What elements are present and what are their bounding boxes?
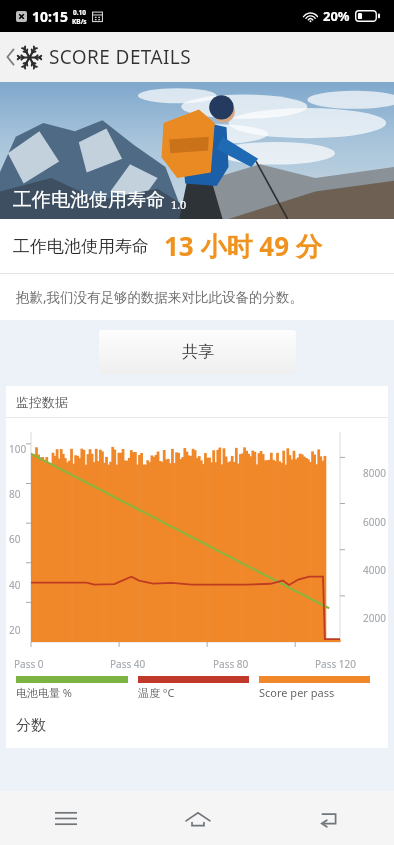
- staticText: 20%: [323, 7, 350, 25]
- staticText: 10:15: [32, 7, 68, 26]
- staticText: 80: [9, 487, 21, 501]
- staticText: 共享: [182, 342, 214, 362]
- button[interactable]: Recent apps: [0, 791, 132, 845]
- staticText: 40: [9, 578, 21, 592]
- staticText: SCORE DETAILS: [49, 44, 192, 70]
- staticText: 2000: [363, 611, 386, 625]
- staticText: Pass 120: [315, 657, 356, 671]
- staticText: Pass 0: [14, 657, 44, 671]
- button[interactable]: Home: [132, 791, 263, 845]
- staticText: 温度 °C: [138, 685, 175, 700]
- staticText: 电池电量 %: [16, 685, 73, 700]
- staticText: 0.10: [73, 8, 86, 17]
- staticText: Pass 80: [213, 657, 249, 671]
- button[interactable]: Back: [0, 38, 202, 76]
- staticText: 13 小时 49 分: [164, 228, 322, 264]
- staticText: Pass 40: [110, 657, 146, 671]
- staticText: 1.0: [171, 197, 187, 212]
- staticText: KB/s: [72, 17, 87, 26]
- staticText: 8000: [363, 466, 386, 480]
- staticText: 4000: [363, 563, 386, 577]
- staticText: 分数: [16, 716, 46, 735]
- staticText: Score per pass: [259, 685, 335, 700]
- button[interactable]: 共享: [99, 330, 296, 374]
- staticText: 工作电池使用寿命: [13, 236, 149, 257]
- staticText: 6000: [363, 515, 386, 529]
- staticText: 监控数据: [16, 394, 68, 410]
- staticText: 60: [9, 532, 21, 546]
- staticText: 抱歉,我们没有足够的数据来对比此设备的分数。: [16, 288, 304, 306]
- staticText: 100: [9, 442, 27, 456]
- button[interactable]: Back: [263, 791, 394, 845]
- staticText: 工作电池使用寿命: [13, 188, 165, 212]
- staticText: 20: [9, 623, 21, 637]
